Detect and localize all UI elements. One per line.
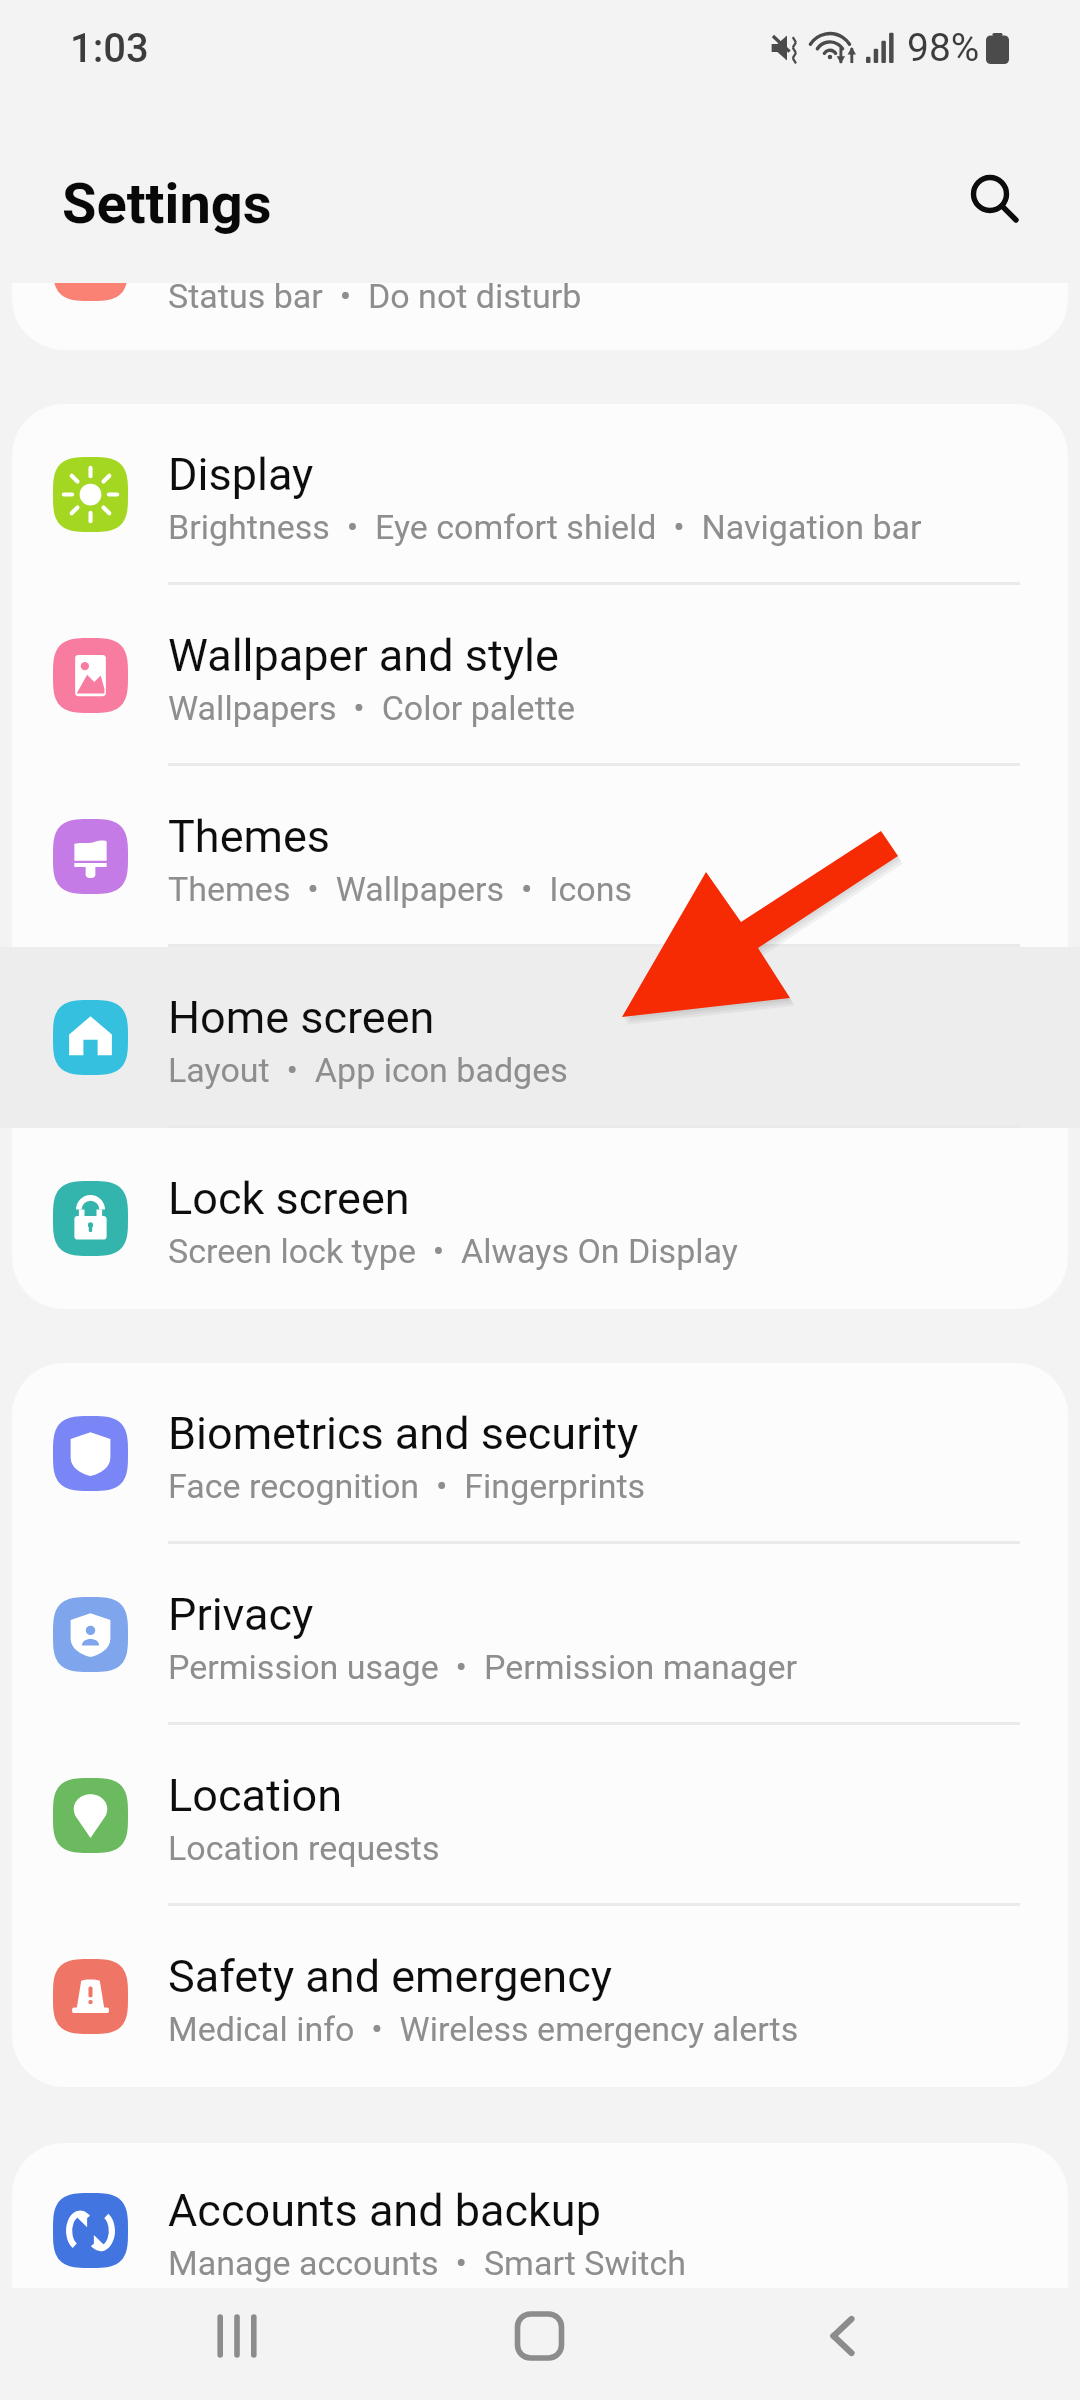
button[interactable]: Wallpaper and style (0, 585, 1080, 766)
staticText: Manage accounts • Smart Switch (168, 2243, 686, 2283)
staticText: Lock screen (168, 1172, 410, 1225)
button[interactable]: Notifications (12, 283, 1068, 350)
button[interactable]: Lock screen (0, 1128, 1080, 1309)
staticText: Layout • App icon badges (168, 1050, 568, 1090)
button[interactable]: Search (943, 148, 1051, 256)
staticText: Accounts and backup (168, 2184, 601, 2237)
staticText: Home screen (168, 991, 435, 1044)
button[interactable]: Safety and emergency (0, 1906, 1080, 2087)
staticText: Medical info • Wireless emergency alerts (168, 2009, 799, 2049)
button[interactable]: Themes (0, 766, 1080, 947)
button[interactable]: Recent apps (86, 2288, 388, 2400)
button[interactable]: Back (691, 2288, 994, 2400)
staticText: Location (168, 1769, 343, 1822)
staticText: Privacy (168, 1588, 314, 1641)
button[interactable]: Display (0, 404, 1080, 585)
button[interactable]: Home (388, 2288, 691, 2400)
staticText: Face recognition • Fingerprints (168, 1466, 646, 1506)
staticText: Settings (62, 171, 272, 237)
staticText: 98% (907, 25, 980, 71)
staticText: Brightness • Eye comfort shield • Naviga… (168, 507, 922, 547)
staticText: Status bar • Do not disturb (168, 283, 582, 316)
button[interactable]: Home screen (0, 947, 1080, 1128)
staticText: 1:03 (70, 25, 149, 72)
staticText: Wallpaper and style (168, 629, 559, 682)
button[interactable]: Privacy (0, 1544, 1080, 1725)
button[interactable]: Location (0, 1725, 1080, 1906)
staticText: Permission usage • Permission manager (168, 1647, 797, 1687)
staticText: Wallpapers • Color palette (168, 688, 575, 728)
staticText: Themes • Wallpapers • Icons (168, 869, 633, 909)
staticText: Location requests (168, 1828, 440, 1868)
button[interactable]: Biometrics and security (0, 1363, 1080, 1544)
staticText: Themes (168, 810, 331, 863)
button[interactable]: Accounts and backup (12, 2143, 1056, 2288)
staticText: Screen lock type • Always On Display (168, 1231, 738, 1271)
staticText: Safety and emergency (168, 1950, 613, 2003)
staticText: Display (168, 448, 314, 501)
staticText: Biometrics and security (168, 1407, 639, 1460)
